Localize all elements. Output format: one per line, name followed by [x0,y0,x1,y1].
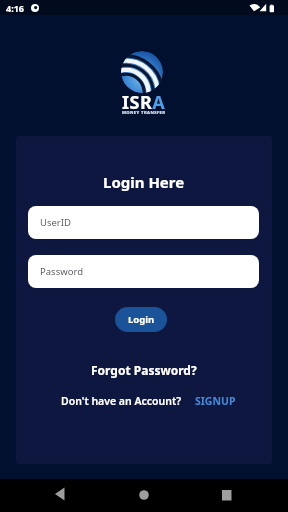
staticText: SIGNUP [195,394,236,408]
button[interactable]: UserID [28,206,259,239]
staticText: ISRA [122,90,166,115]
staticText: Login [128,313,155,326]
staticText: Forgot Password? [91,362,197,378]
button[interactable] [207,479,247,512]
button[interactable] [45,479,85,512]
staticText: MONEY TRANSFER [122,110,166,116]
staticText: Password [40,265,83,278]
button[interactable]: SIGNUP [195,394,236,408]
button[interactable]: Password [28,255,259,288]
staticText: Don't have an Account? [61,394,181,408]
button[interactable]: Forgot Password? [91,362,197,378]
button[interactable] [124,479,164,512]
button[interactable]: Login [115,307,167,332]
staticText: UserID [40,216,71,229]
staticText: 4:16 [6,2,24,14]
staticText: Login Here [103,172,185,192]
